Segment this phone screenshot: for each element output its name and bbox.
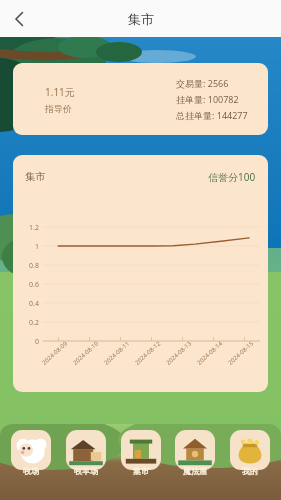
staticText: 2024-08-13 (164, 339, 193, 367)
staticText: 挂单量: 100782 (176, 93, 239, 105)
staticText: 集市 (128, 11, 154, 27)
staticText: 集市 (25, 170, 45, 183)
staticText: 0.4 (15, 299, 39, 309)
button[interactable]: 魔法屋 (171, 430, 219, 488)
staticText: 2024-08-14 (195, 339, 224, 367)
staticText: 0.8 (15, 261, 39, 271)
button[interactable]: 牧羊场 (62, 430, 110, 488)
staticText: 集市 (133, 466, 149, 476)
staticText: 信誉分100 (208, 170, 256, 184)
staticText: 0.2 (15, 318, 39, 328)
button[interactable]: 牧场 (7, 430, 55, 488)
staticText: 交易量: 2566 (176, 77, 229, 89)
staticText: 0.6 (15, 280, 39, 290)
staticText: 2024-08-11 (102, 339, 131, 367)
staticText: 我的 (242, 466, 258, 476)
button[interactable]: 我的 (226, 430, 274, 488)
staticText: 0 (15, 337, 39, 347)
staticText: 2024-08-09 (40, 339, 69, 367)
staticText: 2024-08-12 (133, 339, 162, 367)
staticText: 牧羊场 (74, 466, 98, 476)
staticText: 总挂单量: 144277 (176, 109, 248, 121)
button[interactable]: 集市 (117, 430, 165, 488)
staticText: 1.2 (15, 223, 39, 233)
staticText: 魔法屋 (183, 466, 207, 476)
staticText: 指导价 (45, 103, 72, 114)
button[interactable]: Back (4, 4, 34, 34)
staticText: 1 (15, 242, 39, 252)
button[interactable]: 1.11元 (13, 63, 268, 135)
staticText: 2024-08-10 (71, 339, 100, 367)
staticText: 1.11元 (45, 85, 75, 99)
staticText: 2024-08-15 (226, 339, 255, 367)
staticText: 牧场 (23, 466, 39, 476)
